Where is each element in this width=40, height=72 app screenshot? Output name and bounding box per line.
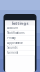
- staticText: Notifications: [7, 31, 24, 35]
- staticText: Appearance: [7, 41, 23, 45]
- staticText: Account: [7, 26, 18, 30]
- staticText: General: [7, 51, 18, 54]
- staticText: Settings: [11, 20, 28, 26]
- staticText: Sounds: [7, 46, 17, 49]
- staticText: Privacy: [7, 36, 15, 40]
